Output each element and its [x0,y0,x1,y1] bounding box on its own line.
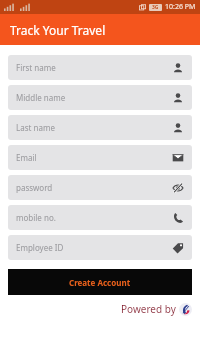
other: Show password [172,182,184,194]
other: Email [172,152,184,164]
staticText: Employee ID [16,242,172,253]
button[interactable]: Middle name [8,85,192,110]
button[interactable]: Create Account [8,269,192,295]
staticText: 10:26 PM [165,2,196,12]
other: Person [172,122,184,134]
button[interactable]: Last name [8,115,192,140]
button[interactable]: Email [8,145,192,170]
button[interactable]: First name [8,55,192,80]
other: Person [172,62,184,74]
staticText: Powered by [121,302,176,316]
button[interactable]: password [8,175,192,200]
staticText: First name [16,62,172,73]
other: Person [172,92,184,104]
other: Company logo [179,303,192,316]
staticText: Track Your Travel [10,22,106,38]
staticText: 3G [152,4,159,11]
staticText: Middle name [16,92,172,103]
staticText: password [16,182,172,193]
button[interactable]: mobile no. [8,205,192,230]
staticText: Last name [16,122,172,133]
staticText: Email [16,152,172,163]
other: Employee ID [172,242,184,254]
staticText: Create Account [69,277,131,288]
other: Phone [172,212,184,224]
button[interactable]: Employee ID [8,235,192,260]
staticText: mobile no. [16,212,172,223]
